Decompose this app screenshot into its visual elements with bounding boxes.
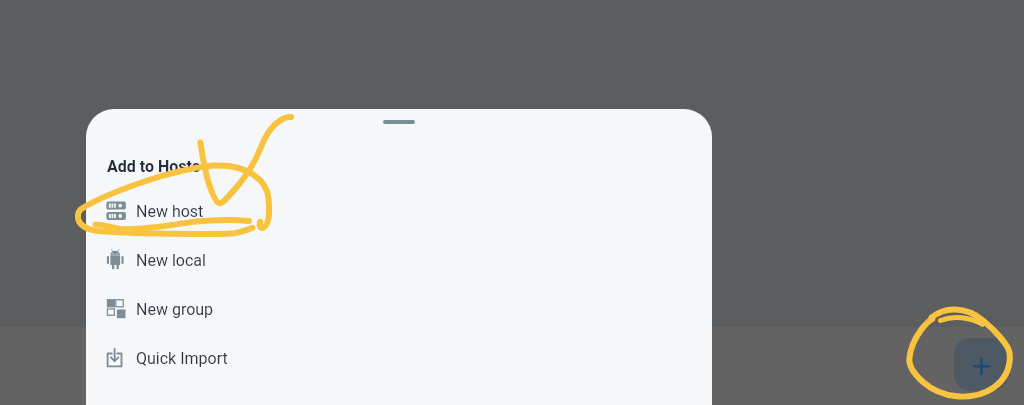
staticText: New group <box>136 300 214 319</box>
button[interactable]: New group <box>86 284 712 333</box>
button[interactable]: Add <box>954 338 1008 391</box>
button[interactable]: New local <box>86 235 712 284</box>
button[interactable]: New host <box>86 186 712 235</box>
staticText: Add to Hosts <box>107 157 201 176</box>
staticText: Quick Import <box>136 349 228 368</box>
button[interactable]: Quick Import <box>86 333 712 382</box>
staticText: New local <box>136 251 206 270</box>
staticText: New host <box>136 202 204 221</box>
